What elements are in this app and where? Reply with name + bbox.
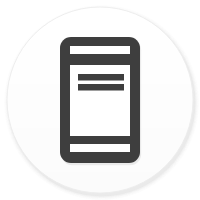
button[interactable]: Device info app icon <box>0 0 200 200</box>
